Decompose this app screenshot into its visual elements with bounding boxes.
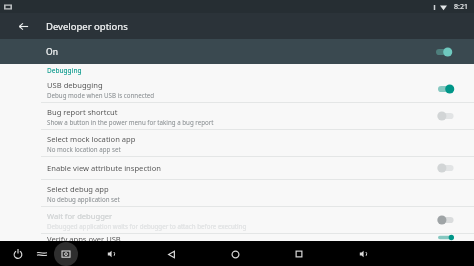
button[interactable]: Recents bbox=[287, 242, 311, 266]
staticText: No mock location app set bbox=[47, 145, 121, 153]
button[interactable]: USB debugging bbox=[0, 76, 474, 102]
staticText: On bbox=[46, 46, 58, 58]
button[interactable]: Back bbox=[0, 13, 46, 39]
staticText: Wait for debugger bbox=[47, 211, 113, 221]
button[interactable]: Power bbox=[6, 242, 30, 266]
staticText: Verify apps over USB bbox=[47, 234, 121, 241]
staticText: No debug application set bbox=[47, 195, 120, 203]
staticText: Debugged application waits for debugger … bbox=[47, 222, 247, 230]
button[interactable]: Select mock location app bbox=[0, 130, 474, 156]
button[interactable]: Verify apps over USB bbox=[0, 234, 474, 241]
staticText: 8:21 bbox=[454, 2, 468, 12]
staticText: Show a button in the power menu for taki… bbox=[47, 118, 214, 126]
button[interactable]: Select debug app bbox=[0, 180, 474, 206]
button[interactable]: Home bbox=[223, 242, 247, 266]
button[interactable]: Volume up bbox=[351, 242, 375, 266]
button[interactable]: Bug report shortcut bbox=[0, 103, 474, 129]
staticText: Debugging bbox=[47, 66, 82, 75]
staticText: Select debug app bbox=[47, 184, 109, 194]
staticText: Developer options bbox=[46, 20, 128, 33]
staticText: Bug report shortcut bbox=[47, 107, 118, 117]
staticText: Debug mode when USB is connected bbox=[47, 91, 155, 99]
button[interactable]: Screenshot bbox=[54, 242, 78, 266]
button[interactable]: Volume down bbox=[99, 242, 123, 266]
button[interactable]: On bbox=[0, 39, 474, 64]
button[interactable]: Volume bbox=[30, 242, 54, 266]
staticText: USB debugging bbox=[47, 80, 103, 90]
staticText: Enable view attribute inspection bbox=[47, 163, 162, 173]
button[interactable]: Enable view attribute inspection bbox=[0, 157, 474, 179]
staticText: Select mock location app bbox=[47, 134, 136, 144]
button[interactable]: Wait for debugger bbox=[0, 207, 474, 233]
button[interactable]: Back bbox=[159, 242, 183, 266]
